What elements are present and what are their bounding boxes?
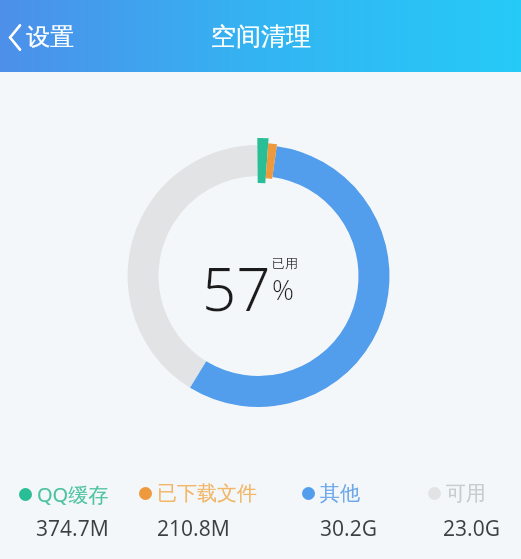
button[interactable]: 可用 <box>426 479 488 508</box>
staticText: QQ缓存 <box>37 481 109 508</box>
staticText: 空间清理 <box>211 21 311 52</box>
staticText: 57 <box>202 247 271 329</box>
staticText: 374.7M <box>36 514 109 543</box>
button[interactable]: 其他 <box>300 479 362 508</box>
button[interactable]: QQ缓存 <box>17 479 111 510</box>
staticText: 30.2G <box>320 514 377 543</box>
button[interactable]: 已下载文件 <box>137 479 259 508</box>
staticText: 210.8M <box>157 514 230 543</box>
staticText: 23.0G <box>443 514 500 543</box>
button[interactable]: Back to 设置 <box>2 18 84 56</box>
staticText: 设置 <box>26 22 74 52</box>
staticText: 已下载文件 <box>157 481 257 506</box>
staticText: % <box>272 271 294 308</box>
staticText: 其他 <box>320 481 360 506</box>
staticText: 已用 <box>272 255 298 271</box>
staticText: 可用 <box>446 481 486 506</box>
